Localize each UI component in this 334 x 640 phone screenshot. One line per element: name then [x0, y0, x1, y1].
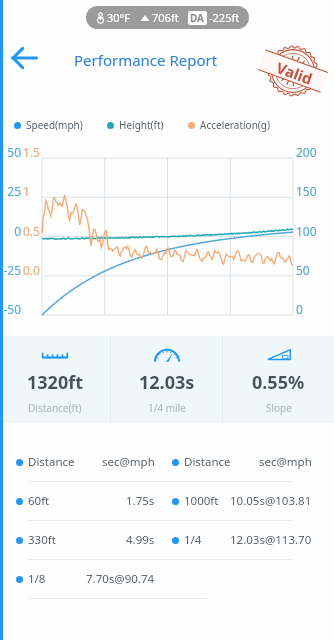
staticText: 0 [296, 301, 334, 316]
staticText: 1/4 [184, 532, 202, 548]
staticText: 200 [296, 144, 334, 159]
button[interactable]: Back [10, 44, 38, 72]
staticText: -25 [0, 262, 21, 277]
staticText: 50 [296, 262, 334, 277]
staticText: -225ft [209, 10, 240, 25]
staticText: 25 [0, 183, 21, 198]
button[interactable]: 60ft [16, 482, 155, 520]
button[interactable]: 1320ft [0, 336, 110, 423]
staticText: Distance(ft) [28, 401, 82, 415]
staticText: 50 [0, 144, 21, 159]
staticText: 1/8 [28, 571, 46, 587]
staticText: 0.5 [23, 223, 43, 238]
staticText: 12.03s [139, 370, 195, 395]
staticText: DA [190, 11, 205, 25]
staticText: 1 [23, 183, 43, 198]
staticText: 1000ft [184, 493, 219, 509]
staticText: 10.05s@103.81 [230, 493, 312, 509]
button[interactable]: Distance [16, 443, 155, 481]
staticText: -50 [0, 301, 21, 316]
staticText: Performance Report [74, 50, 218, 70]
staticText: Valid [274, 57, 315, 89]
button[interactable]: 0.55% [223, 336, 334, 423]
staticText: 30°F [107, 10, 131, 25]
staticText: 330ft [28, 532, 56, 548]
staticText: 1/4 mile [148, 401, 186, 415]
staticText: 1320ft [27, 370, 83, 395]
staticText: Distance [28, 454, 75, 470]
button[interactable]: 1/8 [16, 560, 155, 598]
button[interactable]: 12.03s [111, 336, 222, 423]
staticText: Slope [266, 401, 292, 415]
staticText: 0.55% [252, 370, 305, 395]
staticText: sec@mph [102, 454, 155, 470]
button[interactable]: 1/4 [172, 521, 312, 559]
staticText: 60ft [28, 493, 50, 509]
staticText: sec@mph [259, 454, 312, 470]
staticText: 706ft [152, 10, 179, 25]
button[interactable]: Valid stamp [261, 39, 325, 103]
staticText: 12.03s@113.70 [230, 532, 312, 548]
staticText: 100 [296, 223, 334, 238]
staticText: 150 [296, 183, 334, 198]
staticText: 0 [0, 223, 21, 238]
staticText: 7.70s@90.74 [86, 571, 155, 587]
staticText: 1.75s [126, 493, 155, 509]
staticText: 1.5 [23, 144, 43, 159]
button[interactable]: Distance [172, 443, 312, 481]
staticText: 4.99s [126, 532, 155, 548]
staticText: Speed(mph) [26, 118, 83, 132]
staticText: Acceleration(g) [200, 118, 270, 132]
button[interactable]: 1000ft [172, 482, 312, 520]
staticText: Height(ft) [119, 118, 164, 132]
staticText: Distance [184, 454, 231, 470]
staticText: 0.0 [23, 262, 43, 277]
button[interactable]: 330ft [16, 521, 155, 559]
button[interactable]: Conditions [95, 10, 240, 25]
